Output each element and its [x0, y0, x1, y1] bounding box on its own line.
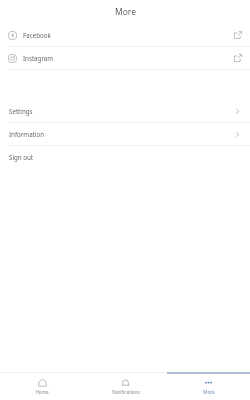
- other: Home: [38, 378, 47, 387]
- staticText: Instagram: [23, 54, 54, 62]
- other: Open: [234, 131, 241, 138]
- other: More: [204, 378, 213, 387]
- other: Open link: [234, 31, 242, 39]
- other: Open link: [234, 54, 242, 62]
- staticText: Settings: [9, 107, 33, 115]
- button[interactable]: Facebook: [0, 24, 250, 46]
- other: Notifications: [121, 378, 130, 387]
- staticText: Sign out: [9, 153, 34, 161]
- button[interactable]: Sign out: [0, 146, 250, 168]
- button[interactable]: Information: [0, 123, 250, 145]
- staticText: Home: [35, 389, 49, 395]
- staticText: More: [115, 6, 136, 18]
- staticText: Notifications: [112, 389, 140, 395]
- button[interactable]: Instagram: [0, 47, 250, 69]
- staticText: More: [203, 389, 215, 395]
- other: Open: [234, 108, 241, 115]
- button[interactable]: More: [167, 374, 250, 400]
- button[interactable]: Notifications: [84, 374, 167, 400]
- button[interactable]: Home: [0, 374, 84, 400]
- staticText: Facebook: [23, 31, 51, 39]
- staticText: Information: [9, 130, 45, 138]
- button[interactable]: Settings: [0, 100, 250, 122]
